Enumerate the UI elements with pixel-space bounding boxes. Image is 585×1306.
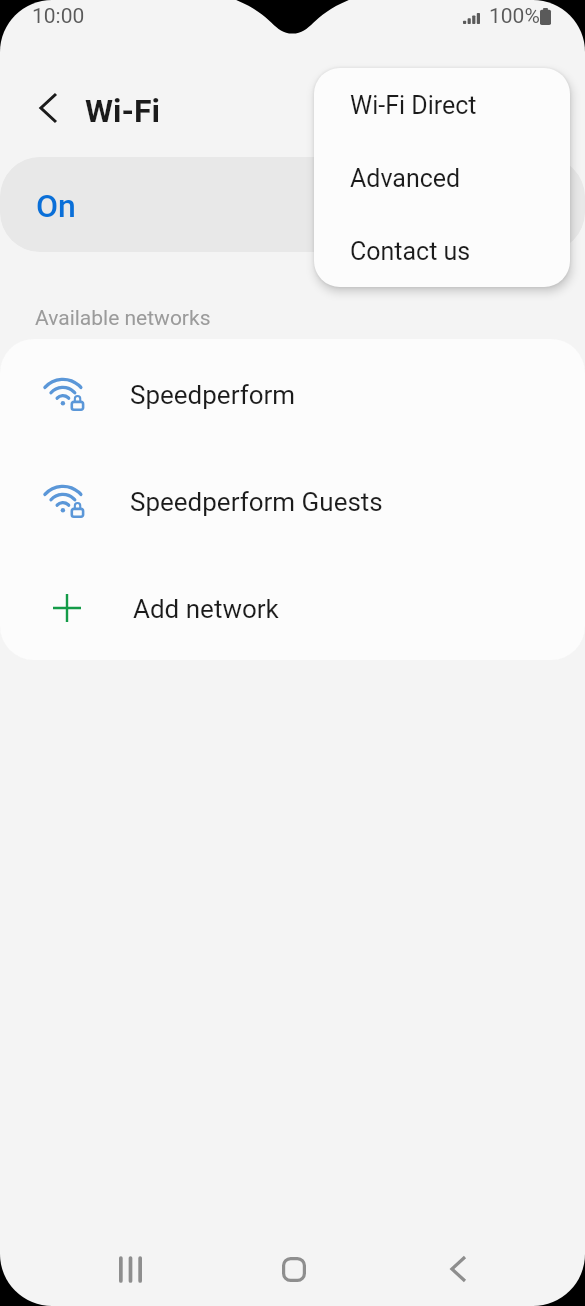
staticText: Speedperform	[130, 380, 296, 410]
button[interactable]: Speedperform	[0, 339, 585, 446]
button[interactable]: Back	[376, 1234, 540, 1304]
staticText: On	[36, 187, 76, 225]
staticText: Available networks	[35, 306, 211, 331]
button[interactable]: Advanced	[314, 141, 570, 214]
button[interactable]: Wi-Fi Direct	[314, 68, 570, 141]
button[interactable]: Contact us	[314, 214, 570, 287]
button[interactable]: Add network	[0, 553, 585, 660]
button[interactable]: Recent apps	[49, 1234, 212, 1304]
button[interactable]: On	[0, 157, 585, 252]
staticText: Advanced	[350, 164, 461, 193]
staticText: Wi-Fi Direct	[350, 91, 477, 120]
button[interactable]: Home	[212, 1234, 376, 1304]
staticText: 100%	[489, 4, 540, 29]
staticText: Speedperform Guests	[130, 487, 383, 517]
staticText: Wi-Fi	[85, 92, 160, 130]
button[interactable]: Speedperform Guests	[0, 446, 585, 553]
staticText: Add network	[133, 594, 279, 624]
staticText: 10:00	[32, 4, 85, 29]
button[interactable]: Navigate up	[24, 84, 72, 132]
staticText: Contact us	[350, 237, 471, 266]
